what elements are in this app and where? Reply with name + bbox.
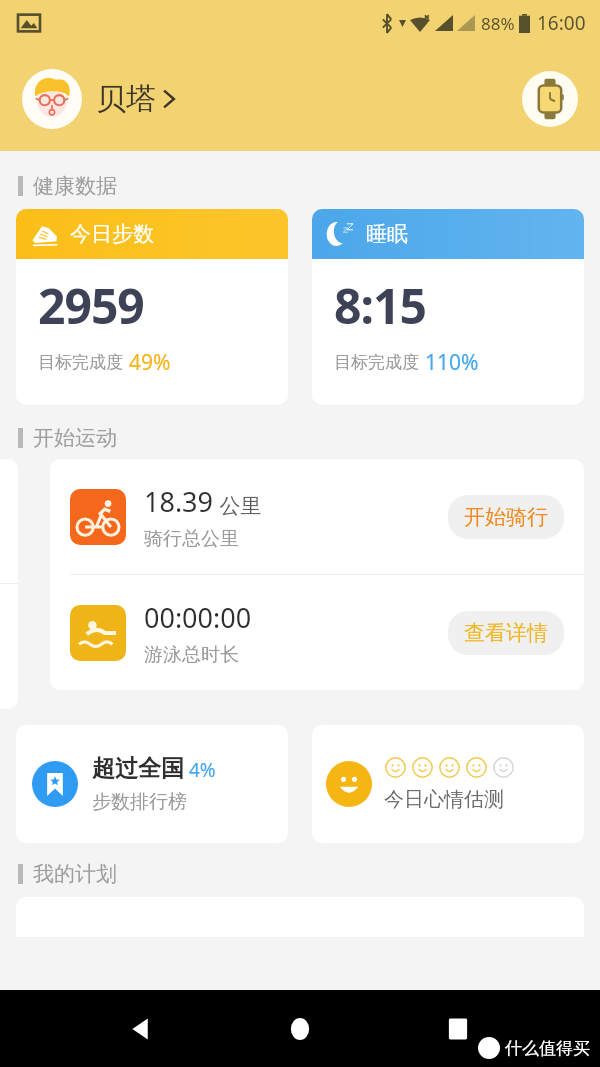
- staticText: 骑行总公里: [144, 527, 239, 551]
- staticText: 16:00: [537, 10, 586, 36]
- button[interactable]: Swimming: [50, 575, 584, 690]
- staticText: 目标完成度: [38, 352, 123, 373]
- staticText: 步数排行榜: [92, 790, 187, 814]
- button[interactable]: 今日心情估测: [312, 725, 584, 843]
- button[interactable]: 睡眠: [312, 209, 584, 405]
- other: Swimming: [70, 605, 126, 661]
- staticText: 18.39: [144, 483, 214, 520]
- button[interactable]: Watch: [522, 71, 578, 127]
- button[interactable]: 贝塔: [22, 69, 176, 129]
- button[interactable]: 今日步数: [16, 209, 288, 405]
- staticText: 00:00:00: [144, 599, 252, 636]
- other: Cycling: [70, 489, 126, 545]
- staticText: 49%: [129, 348, 171, 377]
- staticText: 查看详情: [464, 620, 548, 646]
- button[interactable]: Home: [276, 1005, 324, 1053]
- staticText: 我的计划: [33, 861, 117, 887]
- button[interactable]: Cycling: [50, 459, 584, 574]
- staticText: 目标完成度: [334, 352, 419, 373]
- staticText: 110%: [425, 348, 479, 377]
- button[interactable]: 查看详情: [448, 611, 564, 655]
- staticText: 开始骑行: [464, 504, 548, 530]
- button[interactable]: 开始骑行: [448, 495, 564, 539]
- staticText: 4%: [189, 757, 216, 783]
- staticText: 开始运动: [33, 425, 117, 451]
- staticText: 什么值得买: [505, 1038, 590, 1059]
- staticText: 公里: [214, 491, 262, 520]
- staticText: 贝塔: [96, 80, 156, 118]
- staticText: 2959: [38, 273, 144, 338]
- staticText: 今日心情估测: [384, 787, 504, 812]
- staticText: 游泳总时长: [144, 643, 239, 667]
- staticText: 8:15: [334, 273, 426, 338]
- staticText: 88%: [481, 12, 515, 35]
- staticText: 睡眠: [366, 221, 408, 247]
- staticText: 健康数据: [33, 173, 117, 199]
- button[interactable]: 超过全国: [16, 725, 288, 843]
- staticText: 今日步数: [70, 221, 154, 247]
- staticText: 超过全国: [92, 754, 184, 783]
- button[interactable]: Back: [118, 1005, 166, 1053]
- button[interactable]: Recents: [434, 1005, 482, 1053]
